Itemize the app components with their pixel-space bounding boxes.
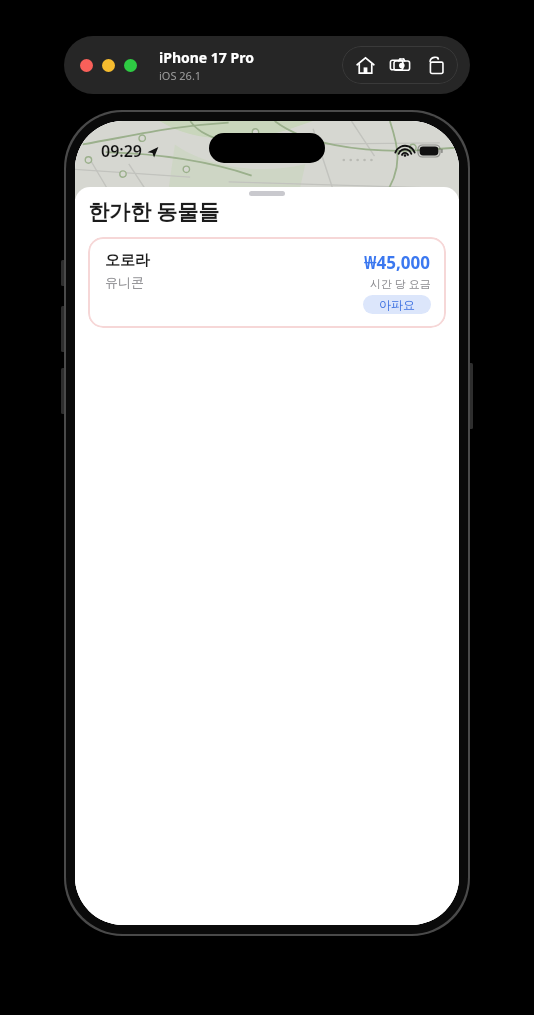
button[interactable]: Screenshot [387,52,413,78]
staticText: 시간 당 요금 [370,276,431,291]
staticText: ₩45,000 [364,251,431,274]
staticText: 한가한 동물들 [88,197,220,226]
staticText: 아파요 [379,297,415,312]
staticText: 오로라 [105,251,150,270]
staticText: 09:29 [101,140,143,162]
staticText: iOS 26.1 [159,68,202,83]
button[interactable]: 아파요 [363,295,431,314]
button[interactable] [124,59,137,72]
staticText: iPhone 17 Pro [159,48,254,67]
button[interactable] [80,59,93,72]
button[interactable]: 오로라 [88,237,446,328]
button[interactable]: Rotate [423,52,449,78]
button[interactable] [102,59,115,72]
button[interactable]: Home [352,52,378,78]
staticText: 유니콘 [105,274,144,290]
